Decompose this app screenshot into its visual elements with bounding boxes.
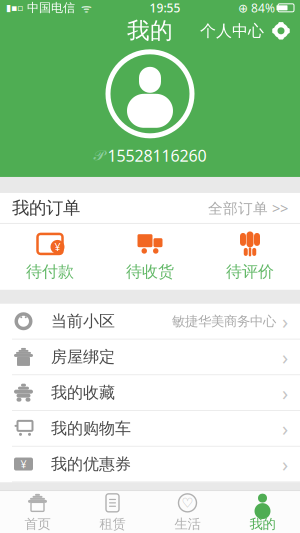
- button[interactable]: 首页: [0, 491, 75, 533]
- staticText: 我的收藏: [51, 383, 115, 402]
- button[interactable]: 当前小区: [0, 304, 300, 339]
- staticText: 个人中心: [200, 21, 264, 41]
- staticText: 待评价: [226, 262, 274, 282]
- staticText: 待收货: [126, 262, 174, 282]
- staticText: ›: [282, 379, 288, 406]
- button[interactable]: ¥: [0, 447, 300, 482]
- button[interactable]: 我的订单: [0, 193, 300, 223]
- button[interactable]: 我的: [225, 491, 300, 533]
- staticText: 我的购物车: [51, 418, 131, 438]
- staticText: ›: [282, 344, 288, 370]
- staticText: 中国电信: [23, 0, 75, 15]
- staticText: ⊕ 84%: [238, 0, 275, 16]
- staticText: 敏捷华美商务中心: [172, 313, 276, 329]
- button[interactable]: 我的购物车: [0, 411, 300, 446]
- staticText: ᯤ: [75, 0, 92, 16]
- staticText: 我的: [127, 17, 173, 45]
- staticText: ›: [282, 451, 288, 477]
- staticText: 生活: [174, 516, 200, 532]
- staticText: 首页: [24, 516, 50, 532]
- staticText: 15528116260: [107, 145, 206, 166]
- staticText: 当前小区: [51, 311, 115, 331]
- button[interactable]: 待收货: [100, 224, 200, 290]
- staticText: 我的订单: [12, 197, 80, 219]
- staticText: ¥: [54, 240, 60, 254]
- button[interactable]: ♡: [150, 491, 225, 533]
- button[interactable]: 租赁: [75, 491, 150, 533]
- staticText: ›: [282, 415, 288, 442]
- button[interactable]: 房屋绑定: [0, 339, 300, 374]
- staticText: ¥: [20, 457, 26, 471]
- button[interactable]: 个人中心: [196, 15, 268, 47]
- staticText: 房屋绑定: [51, 347, 115, 367]
- staticText: 租赁: [99, 516, 125, 532]
- staticText: 19:55: [149, 0, 180, 16]
- button[interactable]: ¥: [0, 224, 100, 290]
- staticText: 𝒫: [93, 148, 105, 163]
- button[interactable]: 我的收藏: [0, 375, 300, 410]
- staticText: 全部订单 >>: [208, 198, 288, 218]
- staticText: ▮▪▫: [6, 2, 23, 13]
- staticText: ♡: [181, 495, 193, 510]
- staticText: ›: [282, 308, 288, 335]
- staticText: 我的优惠券: [51, 454, 131, 474]
- button[interactable]: 设置: [268, 18, 294, 44]
- staticText: 待付款: [26, 262, 74, 282]
- staticText: 我的: [249, 516, 275, 532]
- button[interactable]: 待评价: [200, 224, 300, 290]
